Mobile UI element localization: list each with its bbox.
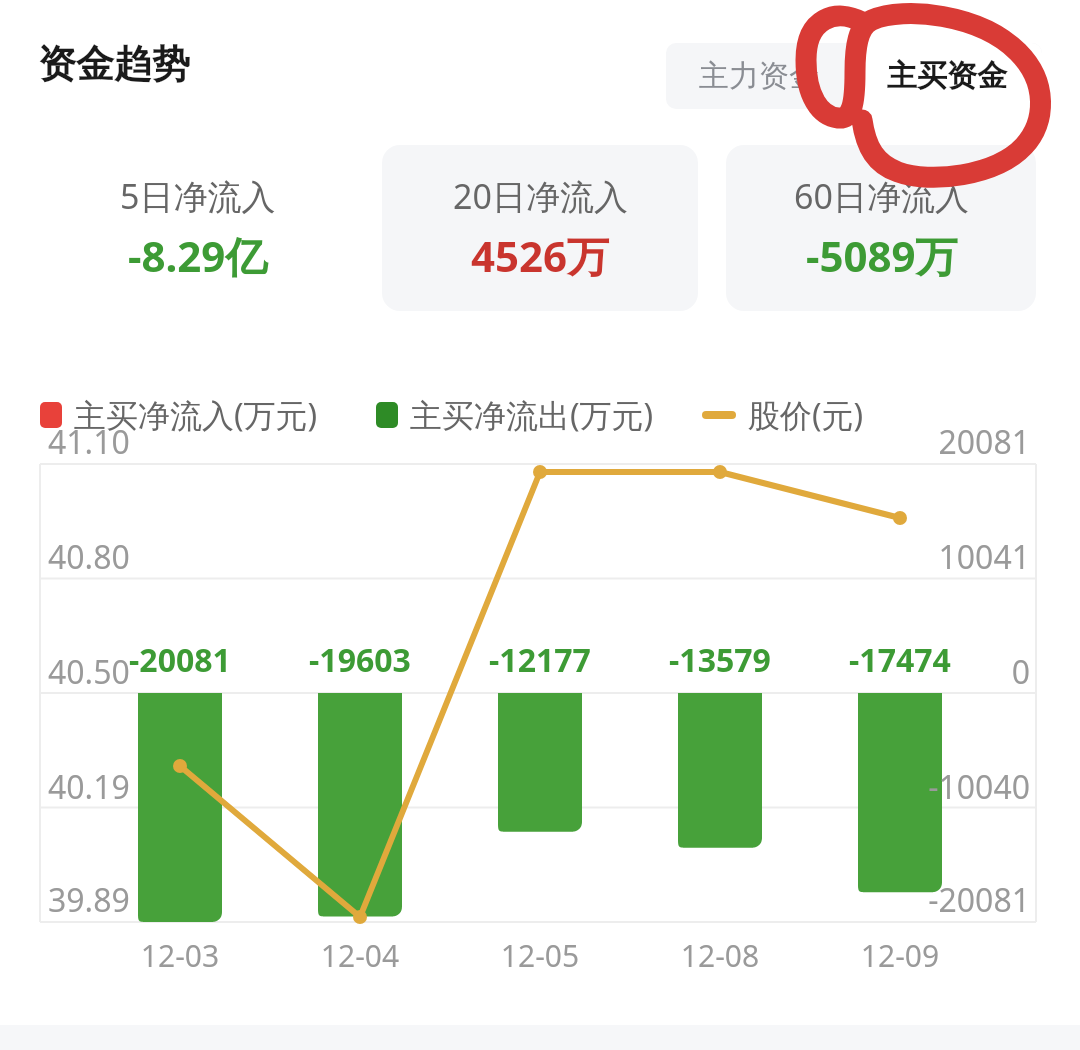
staticText: -20081: [90, 638, 270, 682]
staticText: 60日净流入: [794, 173, 969, 219]
staticText: 5日净流入: [120, 173, 276, 219]
staticText: 40.80: [48, 535, 130, 579]
staticText: 12-05: [480, 935, 600, 976]
staticText: 40.50: [48, 650, 130, 694]
staticText: 主买净流出(万元): [410, 393, 654, 437]
staticText: 资金趋势: [38, 40, 190, 88]
staticText: 主买资金: [887, 57, 1007, 95]
button[interactable]: 20日净流入: [382, 145, 698, 311]
button[interactable]: 主力资金: [666, 43, 852, 109]
staticText: 12-03: [120, 935, 240, 976]
button[interactable]: 5日净流入: [46, 145, 350, 311]
button[interactable]: 60日净流入: [726, 145, 1036, 311]
staticText: 41.10: [48, 420, 130, 464]
staticText: -5089万: [806, 227, 958, 284]
staticText: -12177: [450, 638, 630, 682]
staticText: 12-04: [300, 935, 420, 976]
staticText: 10041: [830, 535, 1030, 579]
staticText: -20081: [830, 878, 1030, 922]
staticText: 20081: [830, 420, 1030, 464]
staticText: 股价(元): [748, 393, 864, 437]
staticText: -13579: [630, 638, 810, 682]
staticText: 20日净流入: [453, 173, 628, 219]
staticText: 12-08: [660, 935, 780, 976]
staticText: 0: [830, 650, 1030, 694]
staticText: -10040: [830, 765, 1030, 809]
staticText: -8.29亿: [128, 227, 268, 284]
button[interactable]: 主买资金: [852, 43, 1042, 109]
staticText: 主买净流入(万元): [74, 393, 318, 437]
staticText: 12-09: [840, 935, 960, 976]
staticText: 4526万: [471, 227, 610, 284]
staticText: -19603: [270, 638, 450, 682]
staticText: 主力资金: [699, 57, 819, 95]
staticText: -17474: [810, 638, 990, 682]
staticText: 39.89: [48, 878, 130, 922]
staticText: 40.19: [48, 765, 130, 809]
